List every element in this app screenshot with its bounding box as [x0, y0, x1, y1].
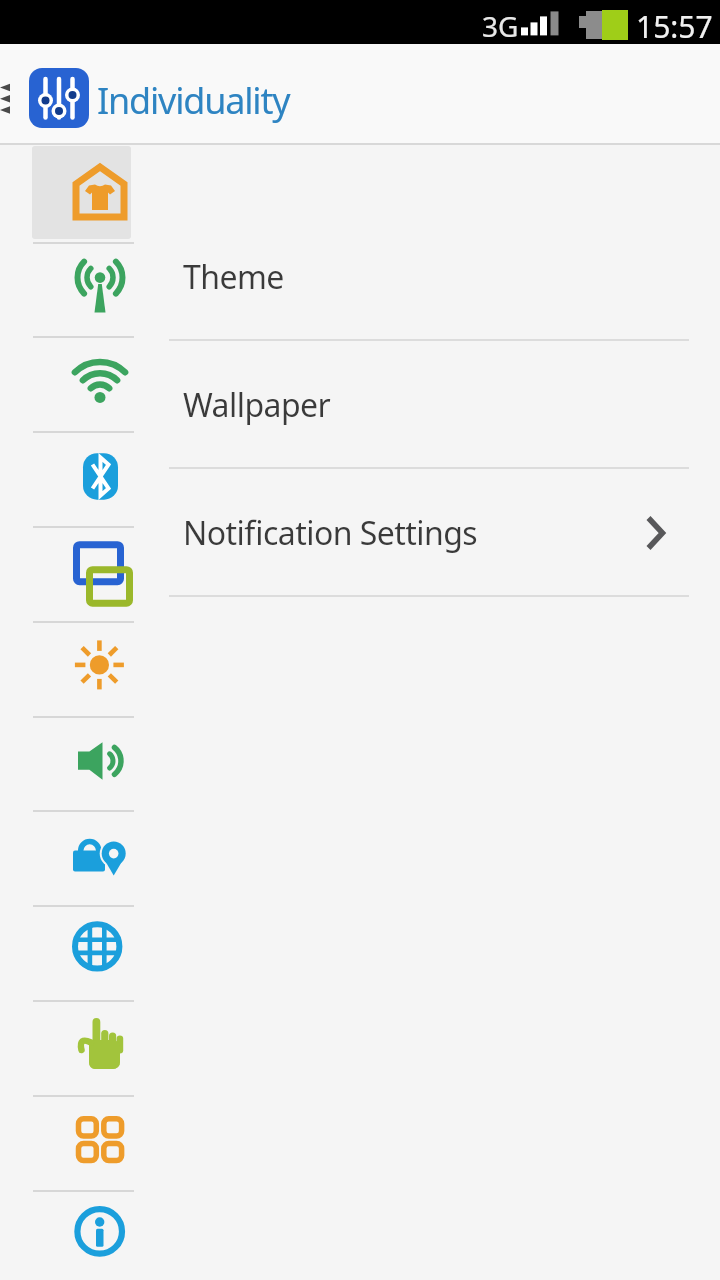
staticText: 3G — [482, 7, 519, 45]
button[interactable] — [32, 715, 134, 809]
button[interactable]: Wallpaper — [167, 341, 720, 469]
button[interactable] — [32, 241, 134, 335]
button[interactable] — [32, 147, 134, 241]
button[interactable] — [32, 1095, 134, 1189]
button[interactable] — [32, 1000, 134, 1094]
button[interactable] — [32, 336, 134, 430]
staticText: Wallpaper — [183, 383, 331, 427]
button[interactable] — [32, 810, 134, 904]
button[interactable] — [32, 1189, 134, 1280]
button[interactable] — [32, 526, 134, 620]
button[interactable] — [32, 431, 134, 525]
button[interactable]: Notification Settings — [167, 469, 720, 597]
staticText: Individuality — [97, 76, 290, 125]
staticText: Notification Settings — [183, 511, 478, 555]
button[interactable]: Theme — [167, 213, 720, 341]
button[interactable] — [29, 68, 89, 128]
button[interactable] — [32, 621, 134, 715]
staticText: Theme — [183, 255, 284, 299]
button[interactable] — [32, 905, 134, 999]
staticText: 15:57 — [636, 6, 713, 47]
